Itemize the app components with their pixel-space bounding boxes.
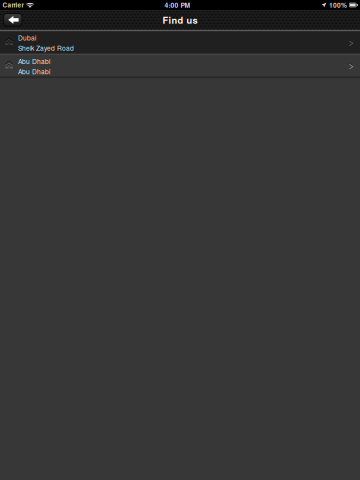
staticText: Abu Dhabi: [18, 66, 50, 76]
staticText: Sheik Zayed Road: [18, 43, 74, 53]
button[interactable]: Abu Dhabi: [0, 55, 360, 76]
staticText: 4:00 PM: [164, 0, 190, 10]
button[interactable]: Dubai: [0, 31, 360, 53]
staticText: Abu Dhabi: [18, 56, 50, 66]
staticText: Carrier: [2, 0, 23, 10]
staticText: Dubai: [18, 33, 36, 42]
button[interactable]: Back: [4, 13, 22, 26]
staticText: Find us: [162, 13, 197, 27]
staticText: 100%: [329, 0, 347, 10]
